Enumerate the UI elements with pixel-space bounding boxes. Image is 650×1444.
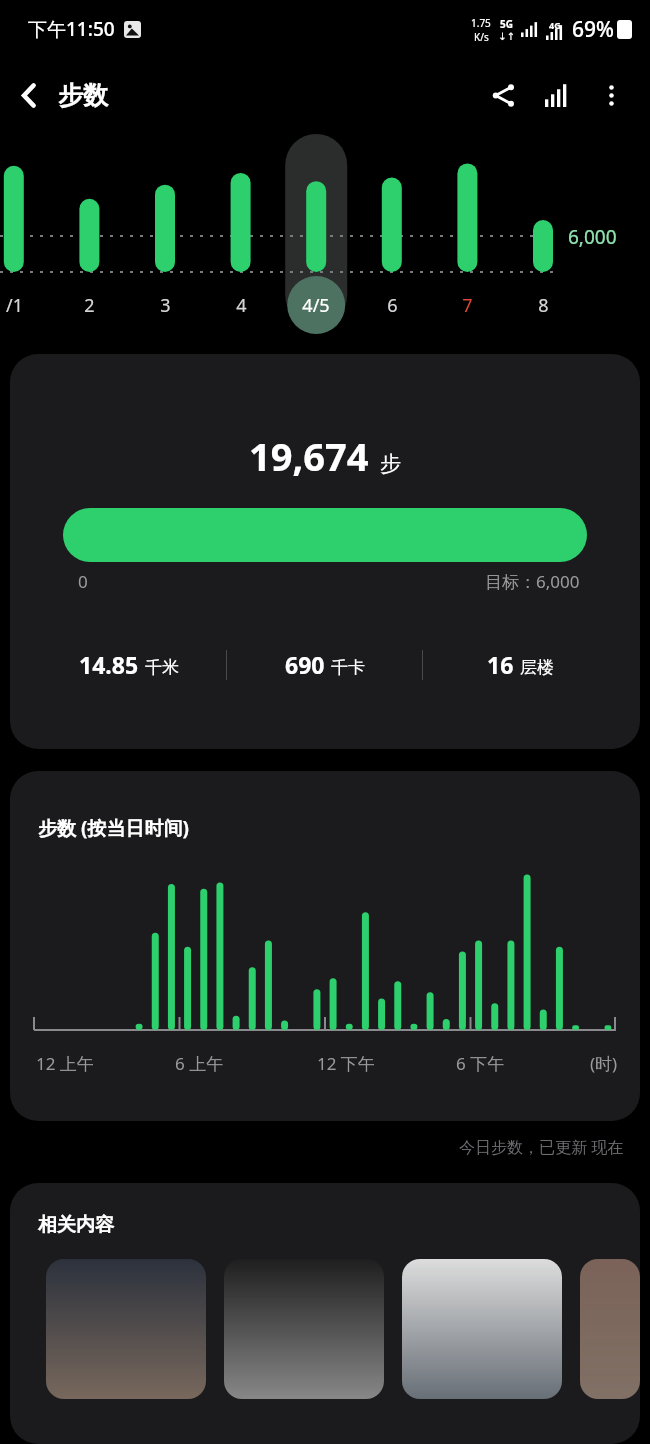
button[interactable]: 3 — [135, 290, 195, 320]
staticText: /1 — [6, 293, 23, 318]
staticText: 步数 (按当日时间) — [38, 815, 189, 841]
staticText: 3 — [160, 293, 171, 318]
staticText: 步数 — [58, 80, 108, 111]
staticText: 目标：6,000 — [485, 570, 580, 593]
staticText: 7 — [462, 293, 473, 318]
button[interactable]: 7 — [437, 290, 497, 320]
staticText: ↓↑ — [498, 31, 515, 43]
staticText: 19,674 — [249, 430, 369, 482]
staticText: 6,000 — [568, 224, 617, 250]
staticText: 今日步数，已更新 现在 — [459, 1136, 624, 1158]
button[interactable] — [580, 1259, 640, 1399]
staticText: 6 下午 — [456, 1052, 505, 1075]
staticText: 0 — [78, 570, 88, 593]
staticText: 4 — [236, 293, 247, 318]
staticText: 千米 — [145, 657, 179, 678]
staticText: 4G — [549, 19, 561, 31]
button[interactable]: 4 — [211, 290, 271, 320]
staticText: 6 — [387, 293, 398, 318]
staticText: 69% — [572, 15, 614, 44]
staticText: 8 — [538, 293, 549, 318]
staticText: 层楼 — [520, 657, 554, 678]
button[interactable]: 6 — [362, 290, 422, 320]
button[interactable]: /1 — [0, 290, 44, 320]
staticText: 步 — [380, 451, 401, 477]
staticText: (时) — [590, 1052, 618, 1075]
staticText: 5G — [500, 17, 513, 31]
button[interactable]: Charts — [530, 68, 584, 122]
button[interactable]: 相关内容 — [10, 1183, 640, 1444]
staticText: K/s — [474, 30, 489, 44]
staticText: 4/5 — [302, 293, 330, 318]
staticText: 6 上午 — [175, 1052, 224, 1075]
staticText: 相关内容 — [38, 1213, 114, 1237]
staticText: 16 — [487, 649, 514, 680]
button[interactable]: Share — [476, 68, 530, 122]
staticText: 12 上午 — [36, 1052, 94, 1075]
button[interactable]: 19,674 — [10, 354, 640, 749]
button[interactable]: More options — [584, 68, 638, 122]
staticText: 12 下午 — [317, 1052, 375, 1075]
staticText: 14.85 — [79, 649, 139, 680]
staticText: 1.75 — [471, 16, 491, 30]
button[interactable]: 8 — [513, 290, 573, 320]
button[interactable] — [402, 1259, 562, 1399]
staticText: 下午11:50 — [28, 16, 115, 42]
button[interactable] — [224, 1259, 384, 1399]
staticText: 2 — [84, 293, 95, 318]
staticText: 千卡 — [331, 657, 365, 678]
button[interactable]: Back — [0, 66, 58, 124]
staticText: 690 — [285, 649, 325, 680]
button[interactable]: 2 — [59, 290, 119, 320]
button[interactable]: 步数 (按当日时间) — [10, 771, 640, 1121]
button[interactable]: 4/5 — [286, 290, 346, 320]
button[interactable] — [46, 1259, 206, 1399]
